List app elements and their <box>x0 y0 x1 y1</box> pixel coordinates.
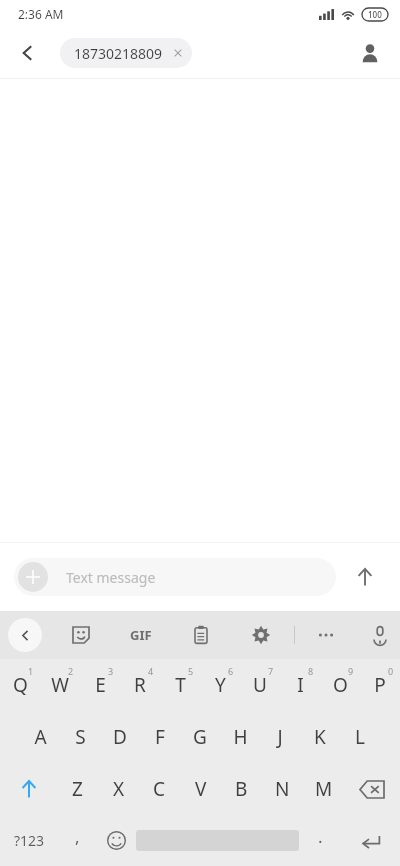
staticText: GIF <box>130 626 152 644</box>
button[interactable]: R <box>120 659 160 711</box>
button[interactable]: G <box>180 711 220 763</box>
button[interactable]: X <box>98 763 139 815</box>
button[interactable]: Backspace <box>344 763 400 815</box>
button[interactable]: D <box>100 711 140 763</box>
button[interactable]: K <box>300 711 340 763</box>
button[interactable]: C <box>139 763 180 815</box>
button[interactable]: S <box>60 711 100 763</box>
button[interactable]: Emoji <box>97 815 136 866</box>
staticText: A <box>34 724 47 750</box>
button[interactable]: Stickers <box>64 618 98 652</box>
staticText: 100 <box>368 9 382 20</box>
button[interactable]: U <box>240 659 280 711</box>
staticText: D <box>113 724 127 750</box>
button[interactable]: A <box>20 711 60 763</box>
staticText: U <box>253 672 267 698</box>
staticText: X <box>113 776 125 802</box>
staticText: W <box>51 672 69 698</box>
staticText: 5 <box>188 665 194 677</box>
staticText: B <box>235 776 248 802</box>
button[interactable]: 18730218809 <box>60 38 192 68</box>
staticText: P <box>374 672 386 698</box>
staticText: R <box>134 672 146 698</box>
staticText: Q <box>13 672 28 698</box>
button[interactable]: Shift <box>0 763 57 815</box>
button[interactable]: Clipboard <box>184 618 218 652</box>
button[interactable]: E <box>80 659 120 711</box>
staticText: 8 <box>308 665 314 677</box>
button[interactable]: Send <box>344 556 386 598</box>
staticText: N <box>275 776 290 802</box>
button[interactable]: Q <box>0 659 40 711</box>
staticText: G <box>193 724 207 750</box>
staticText: O <box>333 672 348 698</box>
staticText: Z <box>72 776 83 802</box>
button[interactable]: V <box>180 763 221 815</box>
staticText: 3 <box>108 665 114 677</box>
button[interactable]: M <box>303 763 344 815</box>
staticText: 0 <box>388 665 394 677</box>
button[interactable]: W <box>40 659 80 711</box>
staticText: J <box>277 724 283 750</box>
button[interactable]: J <box>260 711 300 763</box>
button[interactable]: H <box>220 711 260 763</box>
button[interactable]: L <box>340 711 380 763</box>
button[interactable]: Contact details <box>350 33 390 73</box>
staticText: Y <box>215 672 226 698</box>
button[interactable]: I <box>280 659 320 711</box>
button[interactable]: B <box>221 763 262 815</box>
button[interactable]: , <box>58 815 97 866</box>
button[interactable]: N <box>262 763 303 815</box>
button[interactable]: Attach <box>18 562 48 592</box>
staticText: ?123 <box>14 831 45 850</box>
button[interactable]: GIF <box>124 618 158 652</box>
staticText: T <box>175 672 186 698</box>
staticText: 18730218809 <box>74 44 163 63</box>
staticText: 6 <box>228 665 234 677</box>
button[interactable]: Attach <box>14 558 336 596</box>
button[interactable]: Settings <box>244 618 278 652</box>
button[interactable]: . <box>299 815 342 866</box>
staticText: V <box>195 776 207 802</box>
staticText: C <box>153 776 166 802</box>
button[interactable]: O <box>320 659 360 711</box>
button[interactable]: Back <box>8 33 48 73</box>
staticText: 4 <box>148 665 154 677</box>
button[interactable]: T <box>160 659 200 711</box>
staticText: , <box>75 825 80 848</box>
staticText: M <box>315 776 333 802</box>
button[interactable]: Z <box>57 763 98 815</box>
button[interactable]: ?123 <box>0 815 58 866</box>
button[interactable]: More options <box>309 618 343 652</box>
staticText: F <box>155 724 165 750</box>
staticText: Text message <box>66 568 156 587</box>
staticText: E <box>95 672 106 698</box>
staticText: K <box>314 724 326 750</box>
staticText: L <box>355 724 365 750</box>
staticText: 1 <box>28 665 34 677</box>
button[interactable]: Y <box>200 659 240 711</box>
button[interactable]: Voice input <box>363 618 397 652</box>
staticText: 9 <box>348 665 354 677</box>
staticText: I <box>297 672 304 698</box>
staticText: 2 <box>68 665 74 677</box>
staticText: 2:36 AM <box>18 6 64 22</box>
button[interactable]: Collapse toolbar <box>8 618 42 652</box>
staticText: . <box>318 825 323 848</box>
button[interactable]: P <box>360 659 400 711</box>
button[interactable]: F <box>140 711 180 763</box>
staticText: H <box>233 724 248 750</box>
button[interactable]: Enter <box>342 815 400 866</box>
staticText: 7 <box>268 665 274 677</box>
staticText: S <box>75 724 86 750</box>
